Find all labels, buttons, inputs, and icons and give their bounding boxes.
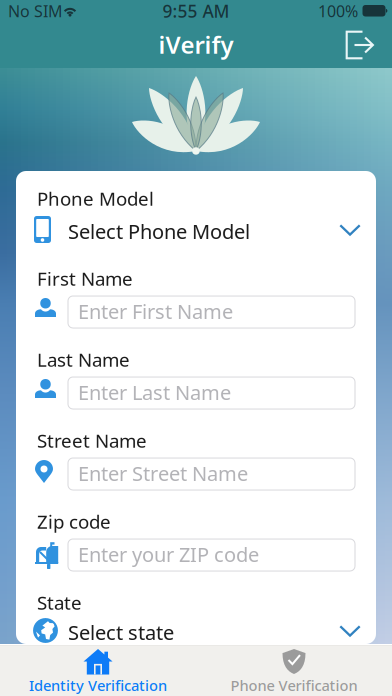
button[interactable]: Identity Verification <box>0 645 196 696</box>
button[interactable]: Select state <box>33 614 363 646</box>
staticText: Enter your ZIP code <box>78 541 259 568</box>
staticText: Phone Model <box>37 186 154 211</box>
staticText: 100% <box>318 0 358 22</box>
button[interactable]: Select Phone Model <box>33 211 363 245</box>
button[interactable]: Log out <box>338 23 382 67</box>
staticText: Select state <box>68 619 174 646</box>
button[interactable]: Phone Verification <box>196 645 392 696</box>
staticText: Enter First Name <box>78 298 233 325</box>
staticText: State <box>37 590 82 615</box>
staticText: No SIM <box>8 0 63 22</box>
staticText: Phone Verification <box>230 675 357 695</box>
staticText: Enter Last Name <box>78 379 231 406</box>
staticText: First Name <box>37 266 133 291</box>
staticText: Identity Verification <box>29 675 167 695</box>
staticText: Select Phone Model <box>68 218 250 245</box>
staticText: Zip code <box>37 509 111 534</box>
staticText: iVerify <box>158 29 233 60</box>
staticText: 9:55 AM <box>162 0 229 22</box>
staticText: Last Name <box>37 347 130 372</box>
staticText: Street Name <box>37 428 147 453</box>
staticText: Enter Street Name <box>78 460 248 487</box>
